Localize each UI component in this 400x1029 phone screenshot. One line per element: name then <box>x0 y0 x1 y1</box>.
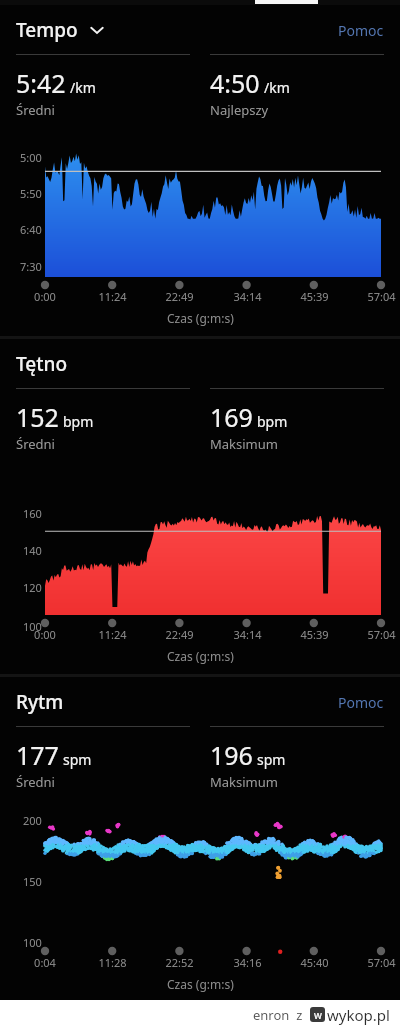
staticText: Tempo <box>16 17 78 43</box>
staticText: 11:24 <box>98 627 127 642</box>
staticText: 160 <box>23 506 42 521</box>
button[interactable]: Pomoc <box>330 17 384 44</box>
button[interactable]: Tętno <box>16 351 68 377</box>
staticText: 22:49 <box>165 289 194 304</box>
button[interactable]: Rytm <box>16 689 64 715</box>
staticText: 5:42 <box>16 66 66 100</box>
staticText: 11:24 <box>98 289 127 304</box>
staticText: spm <box>257 750 286 769</box>
staticText: 22:52 <box>165 955 194 970</box>
staticText: 6:40 <box>20 222 42 237</box>
staticText: Średni <box>16 773 55 791</box>
staticText: bpm <box>257 412 288 431</box>
staticText: 4:50 <box>210 66 260 100</box>
staticText: wykop.pl <box>327 1005 390 1025</box>
staticText: 45:40 <box>300 955 329 970</box>
staticText: Najlepszy <box>210 101 269 119</box>
staticText: 57:04 <box>367 289 396 304</box>
staticText: 169 <box>210 400 253 434</box>
staticText: enron z <box>253 1006 303 1024</box>
staticText: 140 <box>23 543 42 558</box>
staticText: 196 <box>210 738 253 772</box>
staticText: 0:00 <box>34 289 56 304</box>
staticText: 11:28 <box>98 955 127 970</box>
staticText: Maksimum <box>210 773 278 791</box>
staticText: Maksimum <box>210 435 278 453</box>
staticText: Średni <box>16 435 55 453</box>
staticText: 57:04 <box>367 955 396 970</box>
staticText: Rytm <box>16 689 64 715</box>
staticText: w <box>314 1008 322 1022</box>
button[interactable]: Pomoc <box>330 689 384 716</box>
staticText: Średni <box>16 101 55 119</box>
staticText: Tętno <box>16 351 68 377</box>
staticText: 57:04 <box>367 627 396 642</box>
staticText: 34:16 <box>233 955 262 970</box>
staticText: 100 <box>23 619 42 634</box>
staticText: Czas (g:m:s) <box>167 976 234 992</box>
other: Expand <box>88 21 106 39</box>
staticText: /km <box>70 78 96 97</box>
staticText: Pomoc <box>338 693 384 712</box>
staticText: 34:14 <box>233 627 262 642</box>
staticText: 0:00 <box>34 627 56 642</box>
staticText: 7:30 <box>20 259 42 274</box>
staticText: 177 <box>16 738 59 772</box>
staticText: 5:00 <box>20 150 42 165</box>
staticText: 45:39 <box>300 627 329 642</box>
staticText: 152 <box>16 400 59 434</box>
staticText: 22:49 <box>165 627 194 642</box>
staticText: 100 <box>23 935 42 950</box>
staticText: /km <box>264 78 290 97</box>
staticText: Czas (g:m:s) <box>167 648 234 664</box>
staticText: spm <box>63 750 92 769</box>
staticText: Pomoc <box>338 21 384 40</box>
staticText: 200 <box>23 813 42 828</box>
staticText: Czas (g:m:s) <box>167 310 234 326</box>
staticText: 34:14 <box>233 289 262 304</box>
staticText: 5:50 <box>20 186 42 201</box>
staticText: 150 <box>23 874 42 889</box>
button[interactable]: Tempo <box>16 17 106 43</box>
staticText: 0:04 <box>34 955 56 970</box>
staticText: 45:39 <box>300 289 329 304</box>
staticText: 120 <box>23 580 42 595</box>
staticText: bpm <box>63 412 94 431</box>
